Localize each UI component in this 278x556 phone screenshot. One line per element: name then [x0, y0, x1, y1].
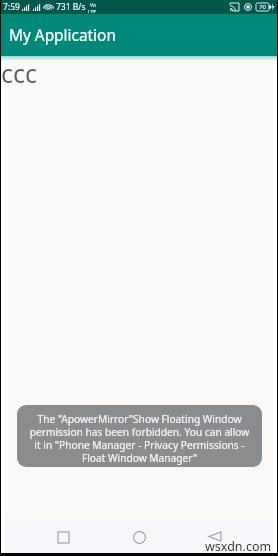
- button[interactable]: Recent apps: [25, 519, 101, 556]
- staticText: ccc: [1, 56, 38, 90]
- button[interactable]: Home: [101, 519, 177, 556]
- staticText: My Application: [9, 25, 116, 46]
- staticText: Vo: [90, 2, 96, 9]
- staticText: 70: [259, 3, 266, 11]
- staticText: 7:59: [3, 1, 20, 13]
- staticText: The "ApowerMirror"Show Floating Window p…: [17, 412, 262, 465]
- button[interactable]: My Application: [0, 14, 278, 56]
- staticText: 731 B/s: [56, 1, 86, 13]
- button[interactable]: Back: [177, 519, 253, 556]
- staticText: wsxdn.com: [205, 538, 272, 555]
- staticText: LTE: [88, 9, 97, 13]
